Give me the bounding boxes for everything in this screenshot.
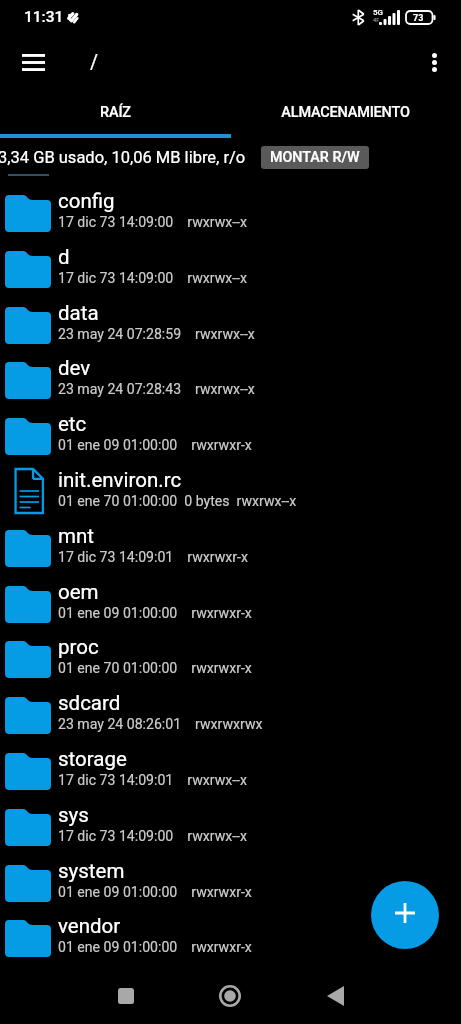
staticText: init.environ.rc [58, 468, 182, 492]
button[interactable]: system [0, 848, 461, 904]
button[interactable]: init.environ.rc [0, 457, 461, 513]
staticText: 5G [373, 8, 383, 17]
staticText: 11:31 [24, 8, 64, 26]
button[interactable]: sdcard [0, 680, 461, 736]
button[interactable]: MONTAR R/W [261, 146, 369, 169]
button[interactable]: sys [0, 792, 461, 848]
button[interactable]: Recent apps [102, 972, 150, 1020]
staticText: proc [58, 635, 99, 659]
button[interactable]: More options [412, 40, 456, 84]
staticText: sdcard [58, 691, 121, 715]
staticText: 4F [373, 17, 380, 23]
button[interactable]: proc [0, 624, 461, 680]
staticText: 23 may 24 07:28:59 rwxrwx--x [58, 326, 255, 343]
button[interactable]: dev [0, 345, 461, 401]
staticText: 01 ene 70 01:00:00 rwxrwxr-x [58, 660, 252, 677]
button[interactable]: RAÍZ [0, 92, 230, 133]
staticText: sys [58, 803, 89, 827]
button[interactable]: d [0, 234, 461, 290]
button[interactable]: oem [0, 569, 461, 625]
button[interactable]: config [0, 178, 461, 234]
staticText: 01 ene 09 01:00:00 rwxrwxr-x [58, 605, 252, 622]
staticText: 23 may 24 08:26:01 rwxrwxrwx [58, 716, 263, 733]
staticText: RAÍZ [100, 104, 131, 121]
staticText: 01 ene 70 01:00:00 0 bytes rwxrwx--x [58, 493, 297, 510]
button[interactable]: Back [311, 972, 359, 1020]
staticText: etc [58, 412, 87, 436]
button[interactable]: storage [0, 736, 461, 792]
staticText: data [58, 301, 99, 325]
button[interactable]: Home [206, 972, 254, 1020]
staticText: config [58, 189, 115, 213]
button[interactable]: data [0, 290, 461, 346]
staticText: 17 dic 73 14:09:00 rwxrwx--x [58, 828, 247, 845]
staticText: vendor [58, 914, 121, 938]
staticText: 01 ene 09 01:00:00 rwxrwxr-x [58, 437, 252, 454]
staticText: 3,34 GB usado, 10,06 MB libre, r/o [0, 148, 246, 167]
staticText: storage [58, 747, 127, 771]
staticText: dev [58, 356, 91, 380]
staticText: d [58, 245, 70, 269]
staticText: 01 ene 09 01:00:00 rwxrwxr-x [58, 884, 252, 901]
staticText: 01 ene 09 01:00:00 rwxrwxr-x [58, 939, 252, 956]
button[interactable]: Add [371, 881, 439, 949]
staticText: MONTAR R/W [270, 149, 360, 166]
staticText: oem [58, 580, 99, 604]
button[interactable]: ALMACENAMIENTO [230, 92, 461, 133]
staticText: 17 dic 73 14:09:01 rwxrwx--x [58, 772, 247, 789]
staticText: / [90, 51, 99, 74]
staticText: system [58, 859, 125, 883]
staticText: 73 [413, 13, 424, 24]
button[interactable]: vendor [0, 903, 461, 959]
staticText: 17 dic 73 14:09:00 rwxrwx--x [58, 270, 247, 287]
staticText: 17 dic 73 14:09:01 rwxrwxr-x [58, 549, 248, 566]
button[interactable]: etc [0, 401, 461, 457]
staticText: 17 dic 73 14:09:00 rwxrwx--x [58, 214, 247, 231]
button[interactable]: Open navigation menu [11, 40, 55, 84]
staticText: 23 may 24 07:28:43 rwxrwx--x [58, 381, 255, 398]
button[interactable]: mnt [0, 513, 461, 569]
staticText: ALMACENAMIENTO [281, 104, 410, 121]
staticText: mnt [58, 524, 95, 548]
